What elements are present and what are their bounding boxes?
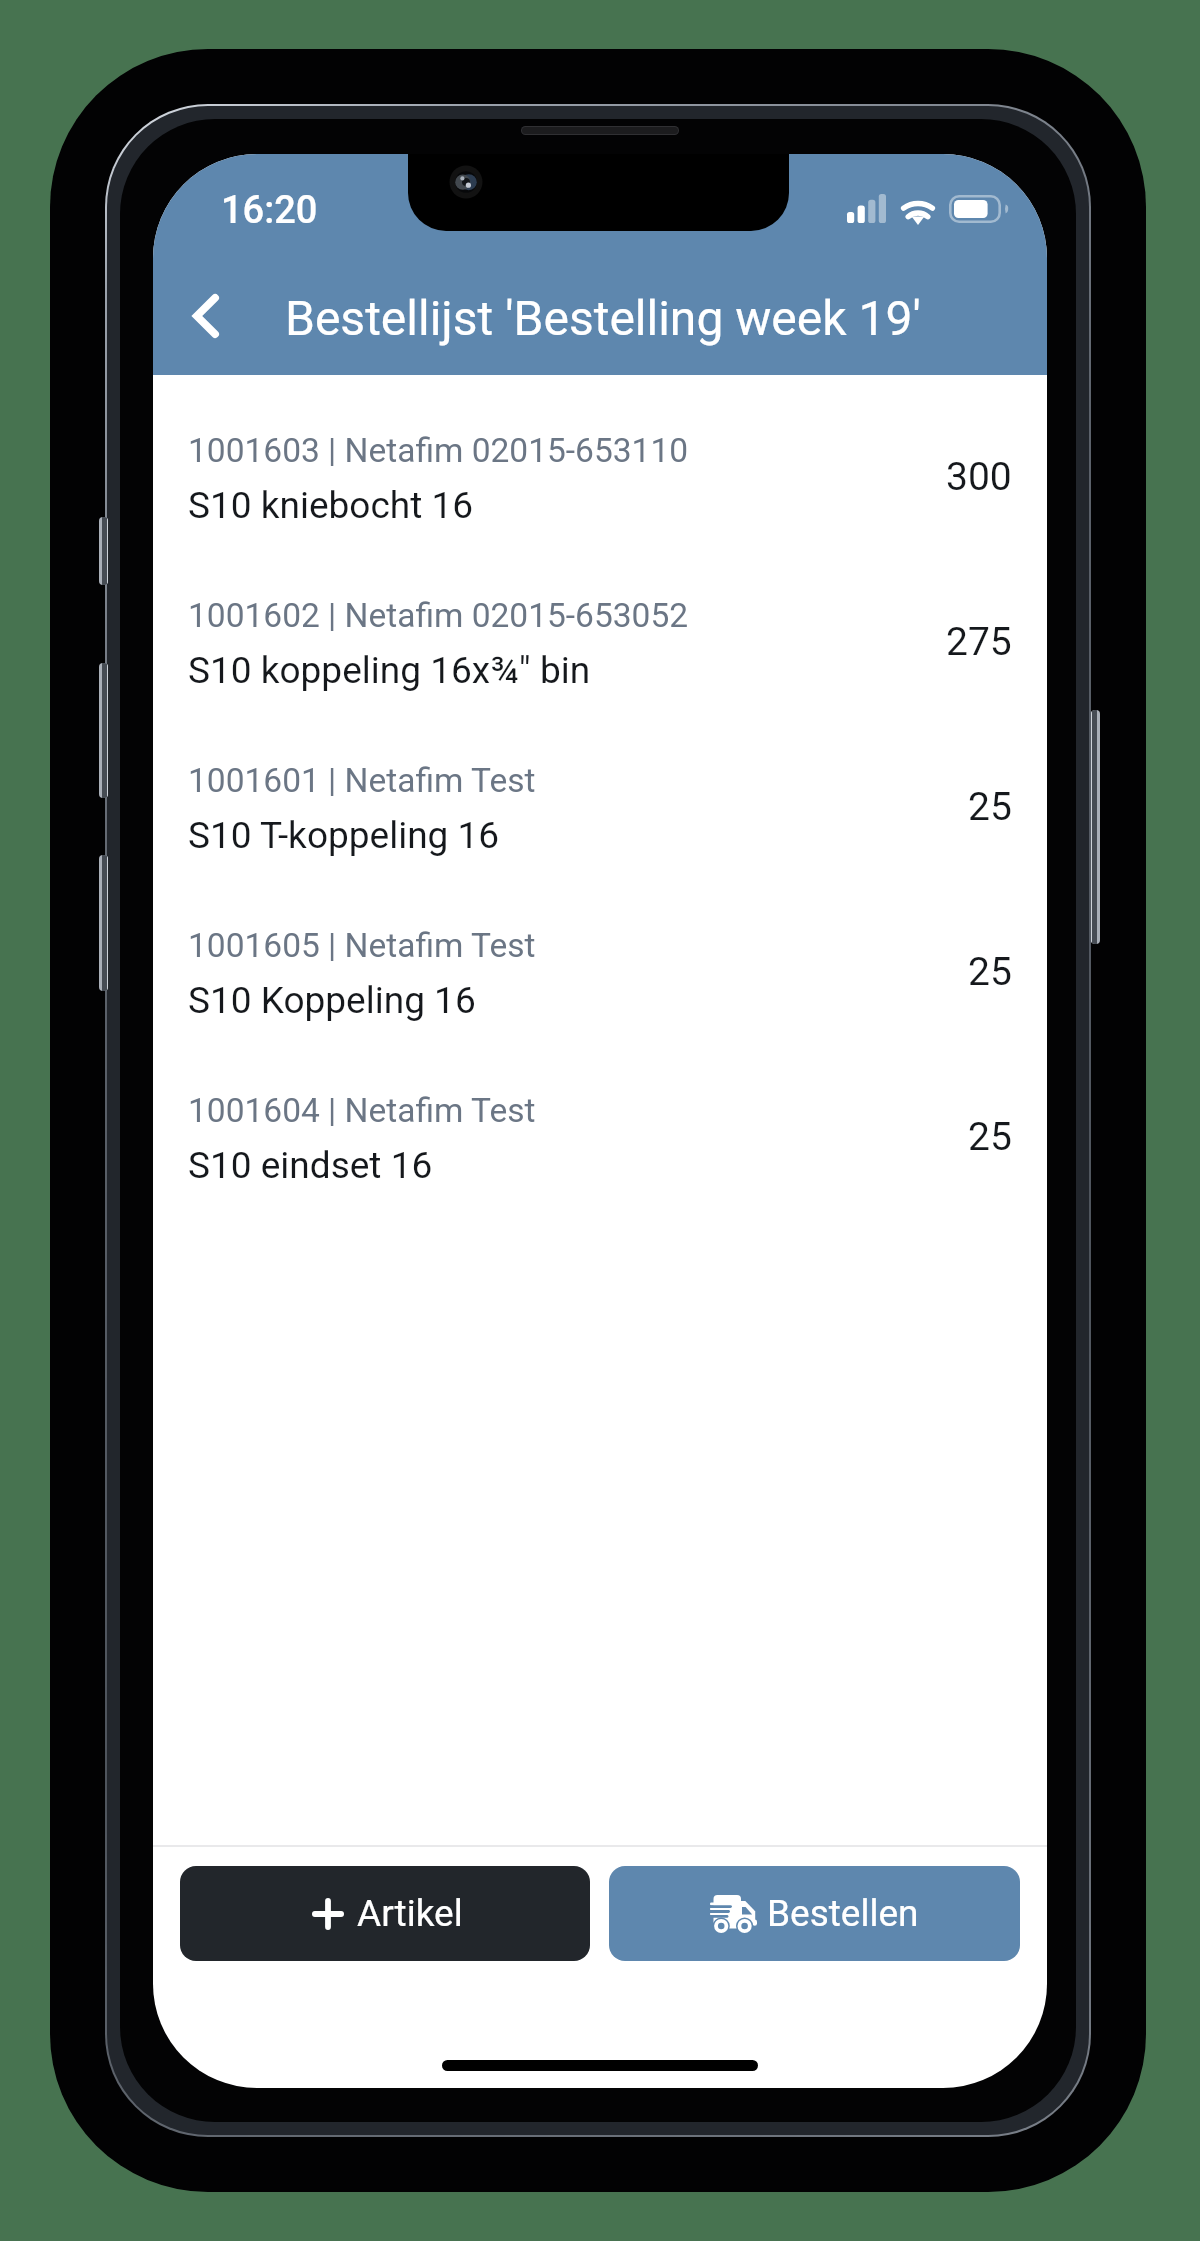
staticText: Bestellijst 'Bestelling week 19' — [285, 290, 921, 346]
staticText: 1001601 | Netafim Test — [188, 761, 536, 800]
staticText: 25 — [968, 784, 1012, 830]
button[interactable]: 1001603 | Netafim 02015-653110 — [153, 423, 1047, 588]
button[interactable]: 1001604 | Netafim Test — [153, 1083, 1047, 1248]
button[interactable]: 1001602 | Netafim 02015-653052 — [153, 588, 1047, 753]
button[interactable]: Artikel — [180, 1866, 590, 1961]
staticText: 1001602 | Netafim 02015-653052 — [188, 596, 689, 635]
staticText: 1001603 | Netafim 02015-653110 — [188, 431, 689, 470]
button[interactable]: 1001605 | Netafim Test — [153, 918, 1047, 1083]
staticText: 275 — [946, 619, 1012, 665]
staticText: 16:20 — [221, 188, 318, 233]
staticText: S10 koppeling 16x¾" bin — [188, 649, 591, 692]
staticText: 1001604 | Netafim Test — [188, 1091, 536, 1130]
button[interactable]: Bestellen — [609, 1866, 1020, 1961]
staticText: Bestellen — [767, 1892, 919, 1935]
staticText: 300 — [946, 454, 1012, 500]
button[interactable]: 1001601 | Netafim Test — [153, 753, 1047, 918]
staticText: S10 T-koppeling 16 — [188, 814, 500, 857]
staticText: S10 eindset 16 — [188, 1144, 433, 1187]
staticText: Artikel — [357, 1892, 463, 1935]
button[interactable]: Back — [172, 282, 240, 350]
staticText: S10 Koppeling 16 — [188, 979, 476, 1022]
staticText: 25 — [968, 1114, 1012, 1160]
staticText: 25 — [968, 949, 1012, 995]
staticText: S10 kniebocht 16 — [188, 484, 474, 527]
staticText: 1001605 | Netafim Test — [188, 926, 536, 965]
